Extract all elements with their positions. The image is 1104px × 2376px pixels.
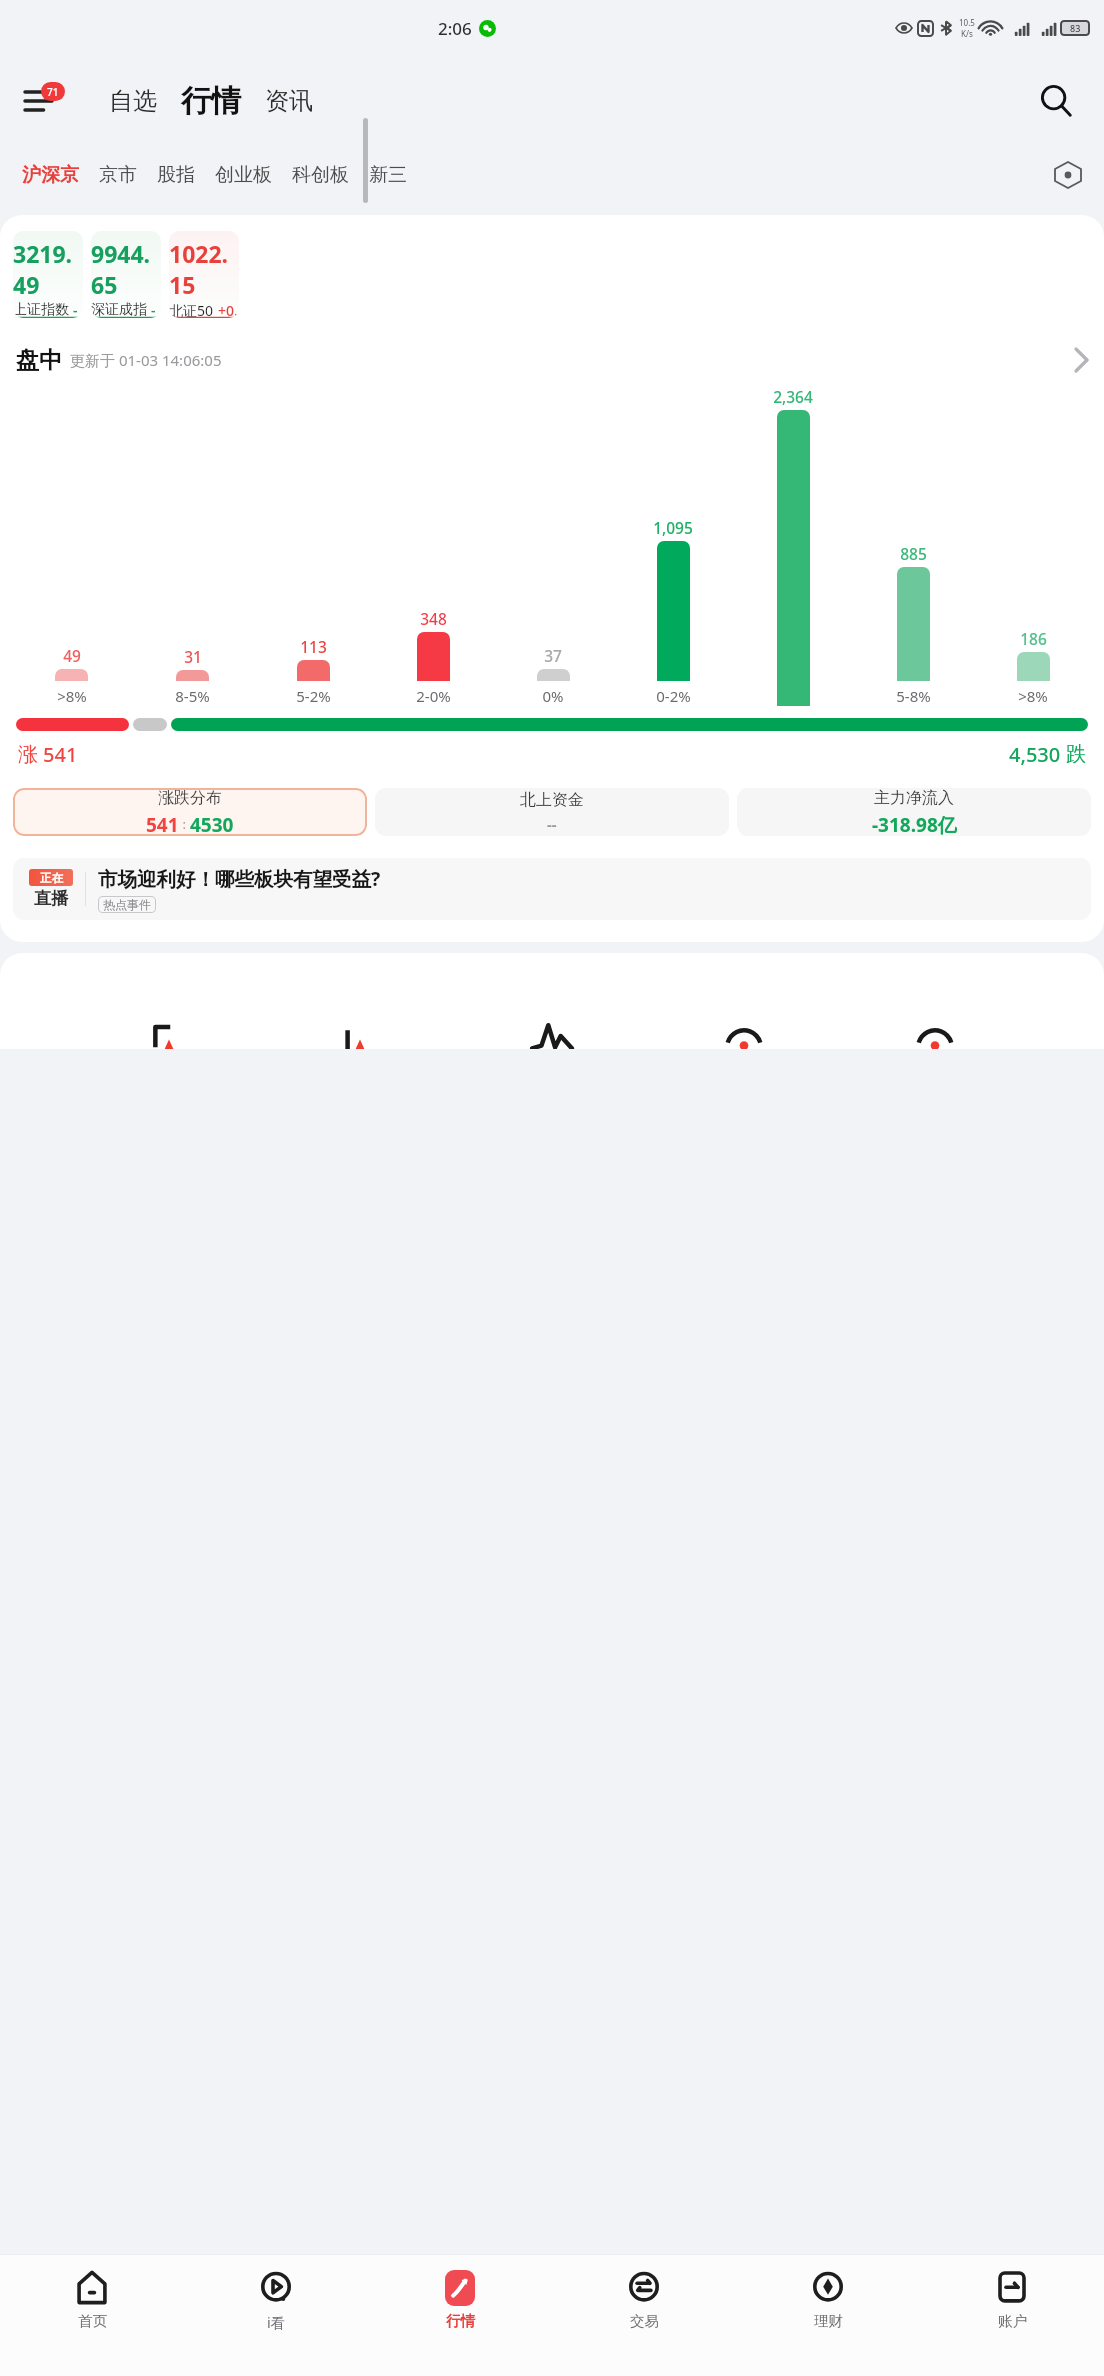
staticText: >8% bbox=[57, 686, 87, 706]
staticText: 行情 bbox=[181, 82, 241, 120]
staticText: 10.5 bbox=[959, 17, 975, 28]
staticText: 2:06 bbox=[438, 17, 472, 40]
staticText: 5-8% bbox=[896, 686, 931, 706]
button[interactable]: 186 bbox=[973, 628, 1093, 706]
staticText: 涨 bbox=[18, 742, 38, 767]
staticText: 主力净流入 bbox=[874, 788, 954, 808]
staticText: 2,364 bbox=[773, 386, 813, 407]
button[interactable]: 1022.15 bbox=[169, 231, 239, 318]
staticText: 3219.49 bbox=[13, 238, 83, 300]
button[interactable]: 资讯 bbox=[261, 80, 317, 122]
button[interactable]: 账户 bbox=[920, 2264, 1104, 2334]
staticText: 热点事件 bbox=[103, 897, 151, 912]
button[interactable]: 新三 bbox=[361, 157, 415, 193]
button[interactable]: 主力净流入 bbox=[737, 788, 1091, 836]
staticText: 行情 bbox=[446, 2312, 475, 2330]
staticText: 北上资金 bbox=[520, 790, 584, 810]
staticText: 31 bbox=[184, 646, 202, 667]
button[interactable]: 首页 bbox=[0, 2264, 184, 2334]
staticText: 股指 bbox=[157, 163, 195, 187]
staticText: >8% bbox=[1018, 686, 1048, 706]
button[interactable]: 行情 bbox=[177, 80, 245, 122]
staticText: 涨跌分布 bbox=[158, 788, 222, 808]
button[interactable]: 交易 bbox=[552, 2264, 736, 2334]
staticText: 37 bbox=[544, 645, 562, 666]
button[interactable]: 37 bbox=[493, 645, 613, 706]
button[interactable]: 北上资金 bbox=[375, 788, 729, 836]
staticText: 沪深京 bbox=[22, 163, 79, 187]
button[interactable]: Shortcut 3 bbox=[521, 1015, 583, 1049]
button[interactable]: Shortcut 5 bbox=[904, 1015, 966, 1049]
button[interactable]: 49 bbox=[11, 645, 132, 706]
button[interactable]: 京市 bbox=[91, 157, 145, 193]
staticText: 9944.65 bbox=[91, 238, 161, 300]
staticText: 0-2% bbox=[656, 686, 691, 706]
button[interactable]: 正在 bbox=[13, 858, 1091, 920]
staticText: 市场迎利好！哪些板块有望受益? bbox=[98, 865, 381, 892]
staticText: 新三 bbox=[369, 163, 407, 187]
staticText: +0.22% bbox=[218, 301, 239, 318]
button[interactable]: 3219.49 bbox=[13, 231, 83, 318]
button[interactable]: Shortcut 4 bbox=[713, 1015, 775, 1049]
staticText: 正在 bbox=[40, 871, 63, 885]
staticText: 交易 bbox=[630, 2312, 659, 2330]
staticText: : bbox=[179, 815, 190, 833]
staticText: K/s bbox=[961, 28, 973, 39]
button[interactable]: Shortcut 2 bbox=[329, 1015, 391, 1049]
staticText: -- bbox=[547, 814, 557, 834]
button[interactable]: 自选 bbox=[105, 80, 161, 122]
staticText: -1.42% bbox=[151, 301, 161, 318]
staticText: 348 bbox=[420, 608, 447, 629]
staticText: 0% bbox=[542, 686, 564, 706]
button[interactable]: 理财 bbox=[736, 2264, 920, 2334]
staticText: 京市 bbox=[99, 163, 137, 187]
staticText: 科创板 bbox=[292, 163, 349, 187]
staticText: 885 bbox=[900, 543, 927, 564]
staticText: 1,095 bbox=[653, 517, 693, 538]
staticText: 北证50 bbox=[169, 301, 214, 318]
button[interactable]: 31 bbox=[132, 646, 253, 706]
staticText: 盘中 bbox=[16, 346, 62, 375]
staticText: 更新于 01-03 14:06:05 bbox=[70, 350, 222, 370]
staticText: 71 bbox=[47, 85, 59, 99]
button[interactable]: 盘中 bbox=[0, 336, 1104, 384]
button[interactable]: Search bbox=[1028, 73, 1084, 129]
button[interactable]: 113 bbox=[253, 636, 373, 706]
staticText: 首页 bbox=[78, 2312, 107, 2330]
staticText: 83 bbox=[1070, 22, 1081, 34]
staticText: 186 bbox=[1020, 628, 1047, 649]
staticText: 直播 bbox=[34, 888, 68, 909]
staticText: -318.98亿 bbox=[872, 812, 957, 836]
button[interactable]: 科创板 bbox=[284, 157, 357, 193]
button[interactable]: 1,095 bbox=[613, 517, 733, 706]
staticText: 4530 bbox=[190, 812, 234, 836]
staticText: 2-0% bbox=[416, 686, 451, 706]
button[interactable]: Menu bbox=[12, 73, 68, 129]
staticText: 1022.15 bbox=[169, 238, 239, 300]
button[interactable]: 涨跌分布 bbox=[13, 788, 367, 836]
button[interactable]: More categories bbox=[1046, 153, 1090, 197]
staticText: 理财 bbox=[814, 2312, 843, 2330]
staticText: 上证指数 bbox=[13, 301, 69, 318]
button[interactable]: 885 bbox=[853, 543, 973, 706]
staticText: 自选 bbox=[109, 86, 157, 116]
staticText: 541 bbox=[43, 741, 78, 768]
button[interactable]: 348 bbox=[373, 608, 493, 706]
staticText: 资讯 bbox=[265, 86, 313, 116]
staticText: 创业板 bbox=[215, 163, 272, 187]
button[interactable]: 2,364 bbox=[733, 386, 853, 706]
staticText: 113 bbox=[300, 636, 327, 657]
button[interactable]: 创业板 bbox=[207, 157, 280, 193]
staticText: 账户 bbox=[998, 2312, 1027, 2330]
button[interactable]: 沪深京 bbox=[14, 157, 87, 193]
button[interactable]: i看 bbox=[184, 2264, 368, 2336]
staticText: 跌 bbox=[1066, 742, 1086, 767]
button[interactable]: Shortcut 1 bbox=[138, 1015, 200, 1049]
staticText: 8-5% bbox=[175, 686, 210, 706]
button[interactable]: 9944.65 bbox=[91, 231, 161, 318]
staticText: 深证成指 bbox=[91, 301, 147, 318]
button[interactable]: 股指 bbox=[149, 157, 203, 193]
staticText: 49 bbox=[63, 645, 81, 666]
button[interactable]: 行情 bbox=[368, 2264, 552, 2334]
staticText: 5-2% bbox=[296, 686, 331, 706]
